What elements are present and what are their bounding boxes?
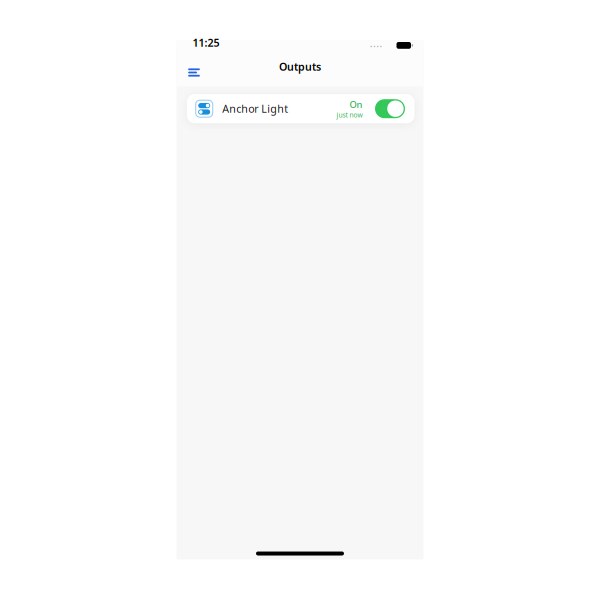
staticText: just now bbox=[336, 110, 362, 119]
staticText: 11:25 bbox=[192, 35, 219, 50]
staticText: Outputs bbox=[279, 59, 321, 74]
staticText: Anchor Light bbox=[222, 102, 288, 116]
button[interactable]: Anchor Light bbox=[187, 94, 414, 123]
button[interactable]: Menu bbox=[186, 66, 202, 78]
staticText: On bbox=[349, 98, 362, 110]
button[interactable]: Anchor Light On bbox=[375, 99, 405, 118]
